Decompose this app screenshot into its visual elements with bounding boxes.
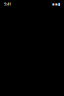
- staticText: 9:41: [4, 1, 11, 7]
- staticText: ▪▪▮: [52, 2, 60, 6]
